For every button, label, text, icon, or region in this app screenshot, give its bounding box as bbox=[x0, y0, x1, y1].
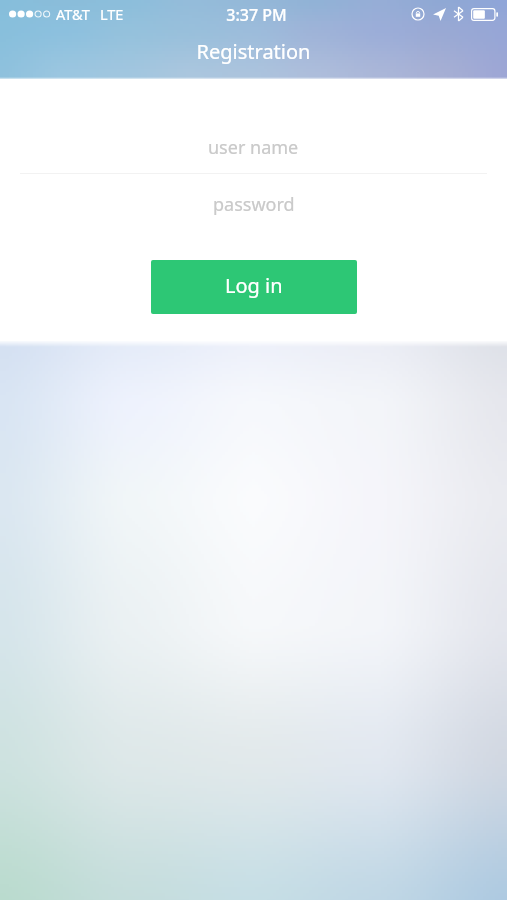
staticText: AT&T bbox=[56, 4, 90, 24]
other: Location bbox=[433, 8, 446, 21]
other: Rotation lock bbox=[411, 7, 425, 21]
button[interactable]: Log in bbox=[151, 260, 357, 314]
staticText: Log in bbox=[225, 272, 283, 299]
button[interactable]: user name bbox=[0, 121, 507, 173]
other: Battery bbox=[471, 8, 498, 21]
staticText: password bbox=[213, 192, 295, 217]
button[interactable]: password bbox=[0, 178, 507, 230]
staticText: LTE bbox=[100, 4, 124, 24]
staticText: 3:37 PM bbox=[3, 4, 507, 26]
staticText: Registration bbox=[0, 38, 507, 65]
staticText: user name bbox=[208, 135, 299, 160]
other: Bluetooth bbox=[454, 7, 463, 21]
other: Signal strength bbox=[9, 0, 53, 28]
